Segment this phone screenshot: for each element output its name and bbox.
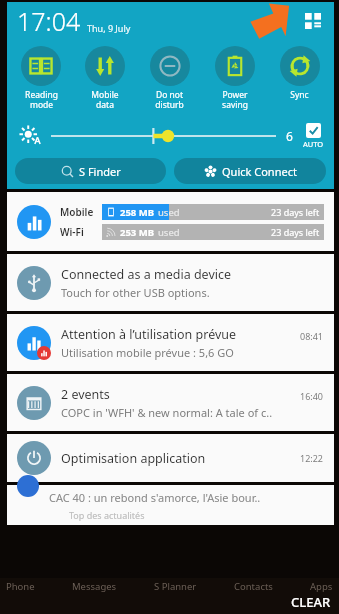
button[interactable]: Connected as a media device	[7, 254, 334, 311]
button[interactable]: Contacts	[232, 580, 275, 593]
staticText: Contacts	[234, 580, 273, 593]
staticText: Mobile	[60, 205, 94, 219]
button[interactable]: Mobile	[7, 192, 334, 251]
staticText: Reading mode	[25, 89, 58, 110]
staticText: AUTO	[303, 139, 324, 149]
staticText: Attention à l’utilisation prévue	[61, 326, 237, 343]
staticText: 2 events	[61, 386, 110, 403]
button[interactable]: Quick Connect	[174, 158, 326, 184]
staticText: Touch for other USB options.	[61, 285, 210, 300]
staticText: used	[158, 226, 180, 239]
staticText: S Finder	[79, 164, 121, 179]
staticText: Power saving	[222, 89, 248, 110]
staticText: 253 MB	[120, 226, 155, 239]
button[interactable]: S Finder	[15, 158, 166, 184]
button[interactable]: Expand quick settings	[300, 8, 326, 34]
staticText: Top des actualités	[69, 509, 145, 521]
staticText: 23 days left	[271, 226, 320, 238]
button[interactable]: 2 events	[7, 374, 334, 431]
staticText: used	[158, 206, 180, 219]
staticText: Optimisation application	[61, 450, 206, 467]
staticText: Utilisation mobile prévue : 5,6 GO	[61, 345, 234, 360]
staticText: 23 days left	[271, 206, 320, 218]
button[interactable]: Phone	[4, 580, 37, 593]
staticText: Quick Connect	[222, 164, 297, 179]
staticText: Messages	[72, 580, 117, 593]
button[interactable]: Brightness	[17, 123, 43, 149]
button[interactable]: Attention à l’utilisation prévue	[7, 314, 334, 371]
staticText: Sync	[290, 89, 309, 101]
staticText: 08:41	[300, 330, 324, 342]
button[interactable]	[51, 124, 276, 148]
button[interactable]: Messages	[70, 580, 119, 593]
button[interactable]: Do not disturb	[137, 40, 202, 114]
staticText: Apps	[310, 580, 333, 593]
button[interactable]: AUTO	[303, 123, 324, 149]
staticText: S Planner	[154, 580, 197, 593]
staticText: Connected as a media device	[61, 266, 232, 283]
staticText: Mobile data	[91, 89, 119, 110]
staticText: Do not disturb	[155, 89, 184, 110]
button[interactable]: Reading mode	[9, 40, 73, 114]
staticText: 258 MB	[120, 206, 155, 219]
staticText: CLEAR	[291, 593, 331, 611]
button[interactable]: Mobile data	[73, 40, 137, 114]
button[interactable]: Power saving	[202, 40, 267, 114]
button[interactable]: CLEAR	[291, 593, 331, 611]
staticText: CAC 40 : un rebond s'amorce, l'Asie bour…	[49, 490, 261, 505]
staticText: Phone	[6, 580, 35, 593]
staticText: Thu, 9 July	[87, 22, 131, 34]
staticText: 6	[286, 128, 293, 144]
staticText: Wi-Fi	[60, 225, 84, 239]
button[interactable]: S Planner	[152, 580, 199, 593]
button[interactable]: Apps	[308, 580, 335, 593]
staticText: COPC in 'WFH' & new normal: A tale of c.…	[61, 405, 273, 420]
button[interactable]: Optimisation application	[7, 434, 334, 482]
staticText: 12:22	[300, 452, 324, 464]
staticText: 16:40	[300, 390, 324, 402]
button[interactable]: Sync	[267, 40, 332, 105]
staticText: 17:04	[17, 4, 81, 38]
